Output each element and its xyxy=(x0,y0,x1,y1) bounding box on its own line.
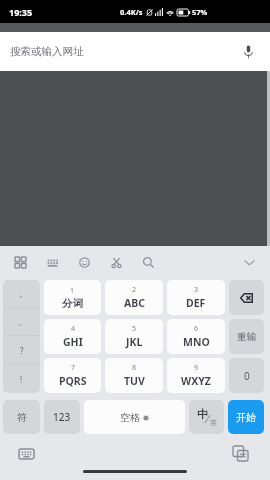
staticText: DEF xyxy=(186,296,206,310)
button[interactable]: 7 xyxy=(44,358,101,393)
button[interactable]: 开始 xyxy=(228,400,264,434)
button[interactable]: 重输 xyxy=(229,319,264,354)
button[interactable]: 123 xyxy=(44,400,80,434)
button[interactable]: Switch keyboard xyxy=(15,442,38,465)
staticText: 4 xyxy=(71,324,76,334)
staticText: 。 xyxy=(18,317,26,327)
button[interactable]: 8 xyxy=(105,358,163,393)
button[interactable]: Clipboard cut xyxy=(105,251,127,273)
staticText: 7 xyxy=(71,363,76,373)
staticText: JKL xyxy=(126,335,143,349)
button[interactable]: 2 xyxy=(105,280,163,315)
staticText: ? xyxy=(20,345,24,356)
button[interactable]: 9 xyxy=(167,358,225,393)
button[interactable]: 4 xyxy=(44,319,101,354)
staticText: 空格 xyxy=(120,411,140,424)
button[interactable]: 0 xyxy=(229,358,264,393)
staticText: , xyxy=(20,288,23,299)
button[interactable]: Search xyxy=(137,251,159,273)
staticText: ABC xyxy=(124,296,145,310)
button[interactable]: 5 xyxy=(105,319,163,354)
staticText: 3 xyxy=(194,285,199,295)
staticText: WXYZ xyxy=(181,374,211,388)
button[interactable]: Chinese English toggle xyxy=(189,400,224,434)
staticText: 分词 xyxy=(62,297,83,310)
button[interactable]: Clipboard xyxy=(229,442,252,465)
staticText: 重输 xyxy=(237,331,256,343)
staticText: 19:35 xyxy=(9,6,33,18)
staticText: 符 xyxy=(17,411,27,424)
staticText: PQRS xyxy=(59,374,87,388)
staticText: 1 xyxy=(70,286,75,296)
staticText: ! xyxy=(20,374,23,385)
staticText: 123 xyxy=(53,410,71,424)
staticText: 0 xyxy=(244,369,250,383)
button[interactable]: ? xyxy=(3,336,40,364)
button[interactable]: Hide keyboard xyxy=(238,251,260,273)
button[interactable]: 符 xyxy=(3,400,40,434)
button[interactable]: Backspace xyxy=(229,280,264,315)
staticText: 搜索或输入网址 xyxy=(10,45,84,58)
staticText: 5 xyxy=(132,324,137,334)
staticText: 6 xyxy=(194,324,199,334)
button[interactable]: ! xyxy=(3,365,40,393)
button[interactable]: 1 xyxy=(44,280,101,315)
staticText: 中 xyxy=(197,407,208,421)
button[interactable]: 6 xyxy=(167,319,225,354)
staticText: GHI xyxy=(63,335,83,349)
button[interactable]: 空格 xyxy=(84,400,185,434)
staticText: 英 xyxy=(210,418,217,427)
staticText: TUV xyxy=(124,374,145,388)
staticText: 开始 xyxy=(236,411,256,424)
button[interactable]: 3 xyxy=(167,280,225,315)
staticText: 57% xyxy=(192,7,208,17)
button[interactable]: Emoji xyxy=(73,251,95,273)
staticText: 9 xyxy=(194,363,199,373)
button[interactable]: Keyboard xyxy=(41,251,63,273)
button[interactable]: Voice search xyxy=(238,42,258,62)
staticText: MNO xyxy=(183,335,210,349)
button[interactable]: Layouts xyxy=(9,251,31,273)
staticText: 8 xyxy=(132,363,137,373)
staticText: 2 xyxy=(132,285,137,295)
button[interactable]: , xyxy=(3,280,40,307)
staticText: 0.4K/s xyxy=(120,7,143,17)
